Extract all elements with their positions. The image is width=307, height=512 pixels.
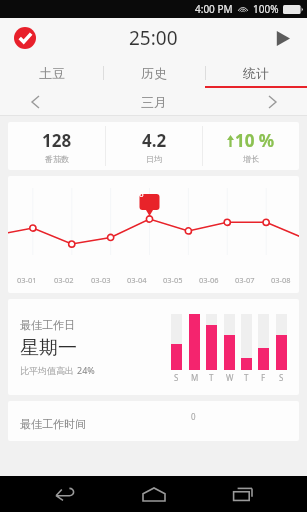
staticText: F [261, 372, 266, 383]
staticText: 星期一 [20, 336, 77, 360]
staticText: 4:00 PM [195, 2, 233, 16]
staticText: 统计 [243, 65, 269, 81]
button[interactable]: 统计 [205, 58, 307, 88]
staticText: 番茄数 [45, 154, 69, 164]
button[interactable]: 最佳工作时间 [8, 401, 299, 441]
staticText: 25:00 [129, 25, 178, 51]
staticText: S [279, 372, 284, 383]
staticText: S [174, 372, 179, 383]
staticText: 比平均值高出 [20, 364, 77, 376]
staticText: W [226, 372, 234, 383]
button[interactable]: 10 % [203, 122, 299, 170]
staticText: 最佳工作日 [20, 318, 75, 332]
button[interactable]: 6 [8, 176, 299, 293]
staticText: 03-07 [235, 275, 255, 285]
staticText: 03-03 [91, 275, 111, 285]
button[interactable]: Previous month [0, 88, 70, 116]
staticText: T [209, 372, 214, 383]
staticText: 03-01 [17, 275, 37, 285]
staticText: 增长 [243, 154, 259, 164]
staticText: 历史 [141, 65, 167, 81]
button[interactable]: 128 [8, 122, 105, 170]
button[interactable]: 最佳工作日 [8, 299, 299, 395]
button[interactable]: Recents [218, 478, 266, 510]
button[interactable]: Next month [237, 88, 307, 116]
staticText: 10 % [235, 129, 275, 152]
button[interactable]: 4.2 [106, 122, 202, 170]
staticText: 土豆 [39, 65, 65, 81]
staticText: M [191, 372, 199, 383]
staticText: 03-05 [163, 275, 183, 285]
button[interactable]: 历史 [103, 58, 205, 88]
button[interactable]: Back [41, 478, 89, 510]
staticText: 03-02 [54, 275, 74, 285]
staticText: T [244, 372, 249, 383]
button[interactable]: Home [130, 478, 178, 510]
staticText: 0 [191, 411, 196, 422]
staticText: 三月 [141, 94, 167, 110]
staticText: 03-06 [199, 275, 219, 285]
staticText: 日均 [146, 154, 162, 164]
button[interactable]: Pomodoro logo [10, 23, 40, 53]
staticText: 128 [42, 129, 72, 152]
staticText: 24% [77, 364, 95, 376]
staticText: 6 [139, 188, 144, 199]
button[interactable]: 土豆 [0, 58, 103, 88]
staticText: 03-08 [271, 275, 291, 285]
staticText: 最佳工作时间 [20, 417, 86, 431]
button[interactable]: Start timer [267, 23, 297, 53]
staticText: 03-04 [127, 275, 147, 285]
staticText: 4.2 [142, 129, 167, 152]
staticText: 100% [253, 2, 279, 16]
